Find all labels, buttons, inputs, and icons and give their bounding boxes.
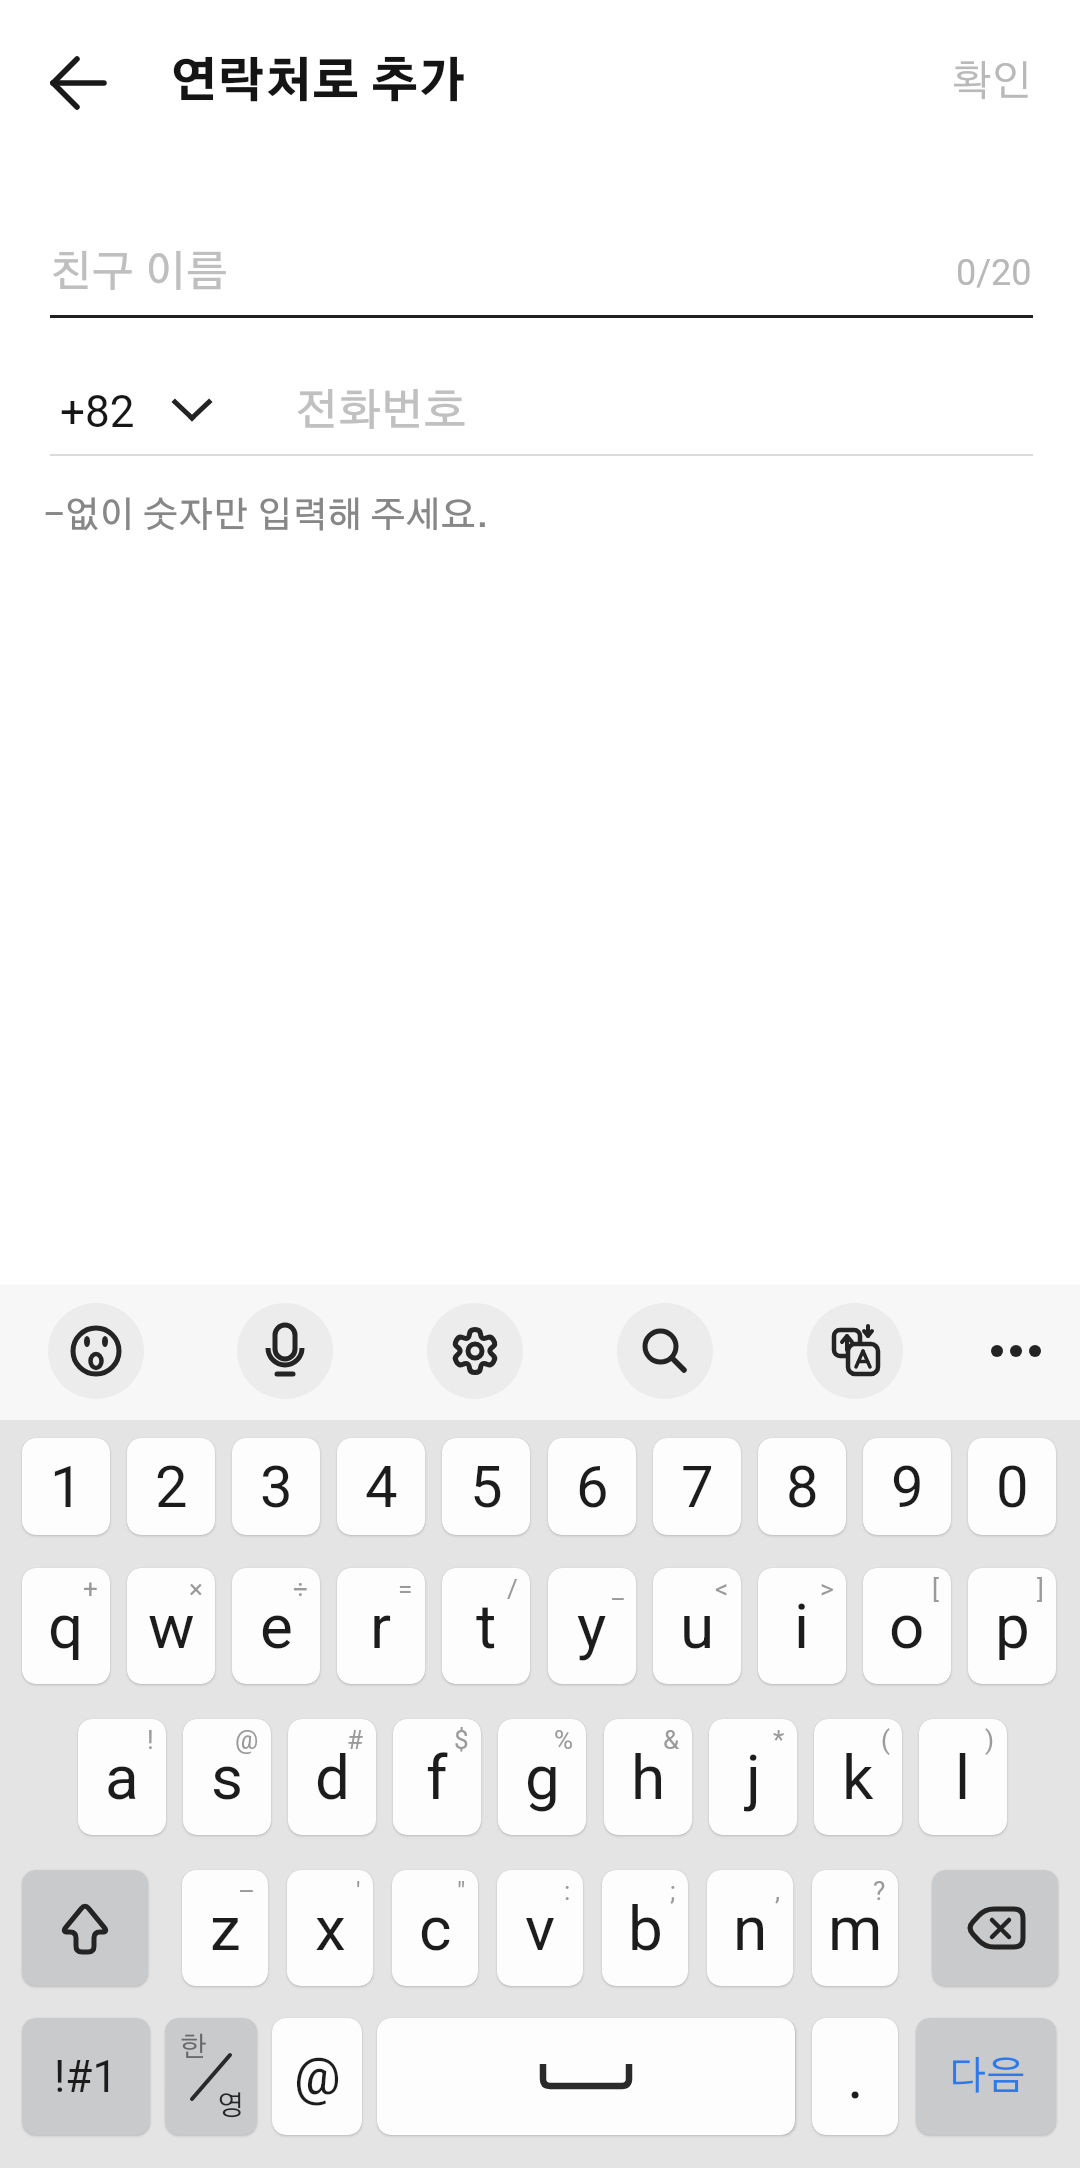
staticText: n: [733, 1892, 768, 1965]
button[interactable]: u: [653, 1568, 741, 1684]
button[interactable]: d: [288, 1719, 376, 1835]
staticText: a: [105, 1741, 139, 1814]
button[interactable]: @: [272, 2018, 362, 2135]
button[interactable]: 5: [442, 1438, 530, 1535]
button[interactable]: 2: [127, 1438, 215, 1535]
staticText: ): [985, 1725, 995, 1755]
staticText: –: [238, 1876, 256, 1906]
staticText: m: [828, 1892, 883, 1965]
staticText: 0/20: [956, 252, 1032, 294]
button[interactable]: a: [78, 1719, 166, 1835]
staticText: #: [347, 1725, 364, 1755]
staticText: ?: [873, 1876, 886, 1906]
staticText: !: [147, 1725, 154, 1755]
button[interactable]: +82: [60, 377, 135, 447]
button[interactable]: [427, 1303, 523, 1399]
button[interactable]: 0: [968, 1438, 1056, 1535]
staticText: z: [210, 1892, 241, 1965]
button[interactable]: o: [863, 1568, 951, 1684]
staticText: 연락처로 추가: [170, 60, 466, 107]
staticText: w: [148, 1590, 195, 1663]
staticText: 2: [155, 1453, 188, 1521]
button[interactable]: c: [392, 1870, 478, 1986]
staticText: o: [889, 1590, 925, 1663]
button[interactable]: t: [442, 1568, 530, 1684]
button[interactable]: w: [127, 1568, 215, 1684]
staticText: @: [235, 1725, 259, 1755]
button[interactable]: [38, 43, 118, 123]
staticText: <: [715, 1574, 729, 1604]
button[interactable]: s: [183, 1719, 271, 1835]
staticText: =: [398, 1574, 413, 1604]
button[interactable]: 확인: [951, 61, 1032, 103]
button[interactable]: [807, 1303, 903, 1399]
button[interactable]: 6: [548, 1438, 636, 1535]
staticText: +: [83, 1574, 98, 1604]
button[interactable]: 7: [653, 1438, 741, 1535]
button[interactable]: 3: [232, 1438, 320, 1535]
staticText: !#1: [54, 2051, 118, 2103]
button[interactable]: l: [919, 1719, 1007, 1835]
button[interactable]: y: [548, 1568, 636, 1684]
button[interactable]: [377, 2018, 795, 2135]
button[interactable]: f: [393, 1719, 481, 1835]
button[interactable]: [932, 1870, 1058, 1986]
staticText: v: [525, 1892, 556, 1965]
staticText: ×: [189, 1574, 203, 1604]
button[interactable]: [617, 1303, 713, 1399]
button[interactable]: g: [498, 1719, 586, 1835]
button[interactable]: [22, 1870, 148, 1986]
staticText: 6: [576, 1453, 609, 1521]
button[interactable]: 다음: [916, 2018, 1056, 2135]
button[interactable]: 8: [758, 1438, 846, 1535]
button[interactable]: b: [602, 1870, 688, 1986]
button[interactable]: 1: [22, 1438, 110, 1535]
button[interactable]: r: [337, 1568, 425, 1684]
staticText: *: [773, 1725, 785, 1755]
button[interactable]: n: [707, 1870, 793, 1986]
staticText: k: [842, 1741, 874, 1814]
staticText: 친구 이름: [50, 252, 228, 295]
staticText: g: [525, 1741, 560, 1814]
staticText: b: [628, 1892, 663, 1965]
button[interactable]: p: [968, 1568, 1056, 1684]
staticText: +82: [60, 386, 135, 438]
staticText: /: [507, 1574, 518, 1604]
staticText: ]: [1037, 1574, 1044, 1604]
staticText: &: [663, 1725, 680, 1755]
staticText: r: [370, 1590, 392, 1663]
button[interactable]: j: [709, 1719, 797, 1835]
staticText: y: [577, 1590, 607, 1663]
button[interactable]: 9: [863, 1438, 951, 1535]
button[interactable]: [48, 1303, 144, 1399]
staticText: q: [48, 1590, 84, 1663]
staticText: ": [457, 1876, 466, 1906]
staticText: [: [932, 1574, 939, 1604]
button[interactable]: h: [604, 1719, 692, 1835]
staticText: j: [746, 1741, 761, 1814]
button[interactable]: 한: [165, 2018, 257, 2135]
staticText: _: [612, 1574, 624, 1604]
button[interactable]: e: [232, 1568, 320, 1684]
staticText: 한: [180, 2034, 207, 2062]
staticText: ': [356, 1876, 361, 1906]
staticText: p: [995, 1590, 1030, 1663]
button[interactable]: m: [812, 1870, 898, 1986]
button[interactable]: k: [814, 1719, 902, 1835]
button[interactable]: z: [182, 1870, 268, 1986]
staticText: ,: [775, 1876, 781, 1906]
button[interactable]: !#1: [22, 2018, 150, 2135]
button[interactable]: x: [287, 1870, 373, 1986]
staticText: 1: [50, 1453, 83, 1521]
staticText: l: [955, 1741, 971, 1814]
staticText: 0: [996, 1453, 1029, 1521]
button[interactable]: q: [22, 1568, 110, 1684]
button[interactable]: 4: [337, 1438, 425, 1535]
button[interactable]: .: [812, 2018, 898, 2135]
button[interactable]: [971, 1311, 1061, 1391]
staticText: 영: [217, 2093, 244, 2121]
staticText: 8: [786, 1453, 819, 1521]
button[interactable]: [237, 1303, 333, 1399]
button[interactable]: i: [758, 1568, 846, 1684]
button[interactable]: v: [497, 1870, 583, 1986]
